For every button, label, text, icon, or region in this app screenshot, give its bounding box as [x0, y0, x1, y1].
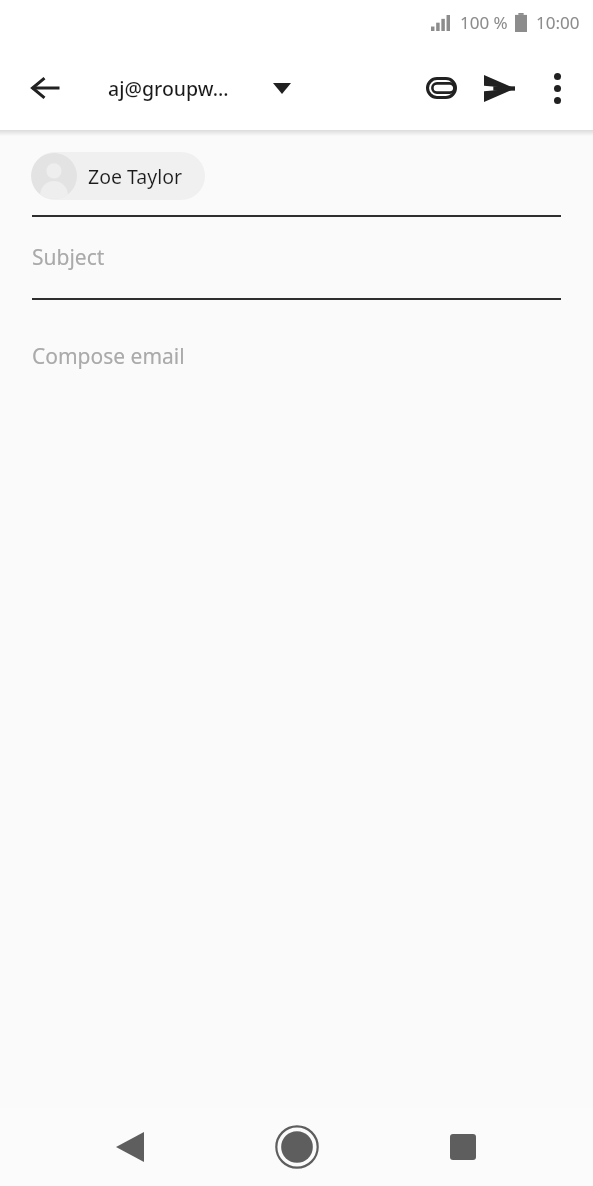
staticText: Compose email — [32, 342, 185, 371]
button[interactable]: Navigate up — [17, 59, 75, 117]
staticText: 10:00 — [536, 11, 580, 34]
staticText: Zoe Taylor — [88, 163, 183, 190]
button[interactable]: Back — [94, 1111, 166, 1183]
button[interactable]: Zoe Taylor — [31, 152, 205, 200]
button[interactable]: More options — [528, 59, 586, 117]
button[interactable]: Send — [470, 59, 528, 117]
button[interactable]: Zoe Taylor — [0, 136, 593, 215]
staticText: aj@groupw… — [108, 75, 229, 102]
button[interactable]: Home — [261, 1111, 333, 1183]
button[interactable]: Subject — [0, 217, 593, 298]
staticText: Subject — [32, 243, 105, 272]
button[interactable]: Attach file — [412, 59, 470, 117]
button[interactable]: aj@groupw… — [108, 57, 303, 119]
staticText: 100 % — [460, 11, 508, 34]
button[interactable]: Recent apps — [427, 1111, 499, 1183]
